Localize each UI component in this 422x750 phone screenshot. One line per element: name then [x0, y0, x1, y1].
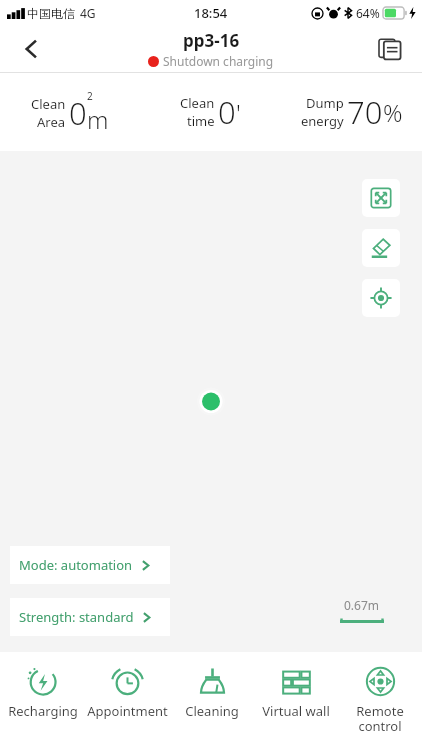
button[interactable]: Locate robot [362, 279, 400, 317]
button[interactable]: Recharging [0, 652, 85, 750]
staticText: 0 [69, 92, 87, 134]
staticText: 2 [87, 89, 93, 103]
button[interactable]: Map list [368, 27, 412, 71]
staticText: 中国电信 [27, 6, 75, 21]
button[interactable]: Cleaning [170, 652, 254, 750]
staticText: % [383, 96, 403, 129]
button[interactable]: Back [10, 27, 54, 71]
staticText: 4G [80, 5, 96, 21]
staticText: 18:54 [194, 4, 228, 22]
staticText: Appointment [87, 702, 168, 720]
staticText: Dump [306, 94, 344, 112]
staticText: Area [37, 113, 66, 131]
staticText: Clean [180, 94, 215, 112]
staticText: 0 [218, 91, 236, 133]
staticText: Remote control [340, 702, 420, 735]
staticText: Strength: standard [19, 608, 134, 626]
staticText: Clean [31, 95, 66, 113]
staticText: Recharging [8, 702, 78, 720]
staticText: 64% [356, 5, 380, 21]
button[interactable]: Erase [362, 229, 400, 267]
staticText: 0.67m [344, 597, 380, 613]
staticText: pp3-16 [183, 29, 240, 52]
button[interactable]: Mode: automation [10, 546, 170, 584]
staticText: m [87, 103, 109, 136]
staticText: Shutdown charging [163, 53, 274, 69]
staticText: time [187, 112, 215, 130]
button[interactable]: Appointment [85, 652, 170, 750]
button[interactable]: Remote control [338, 652, 422, 750]
staticText: Cleaning [185, 702, 239, 720]
staticText: ' [236, 96, 241, 129]
button[interactable]: Fullscreen [362, 179, 400, 217]
staticText: energy [301, 112, 344, 130]
button[interactable]: Virtual wall [254, 652, 338, 750]
button[interactable]: Strength: standard [10, 598, 170, 636]
staticText: Virtual wall [262, 702, 330, 720]
staticText: 70 [347, 91, 383, 133]
staticText: Mode: automation [19, 556, 133, 574]
